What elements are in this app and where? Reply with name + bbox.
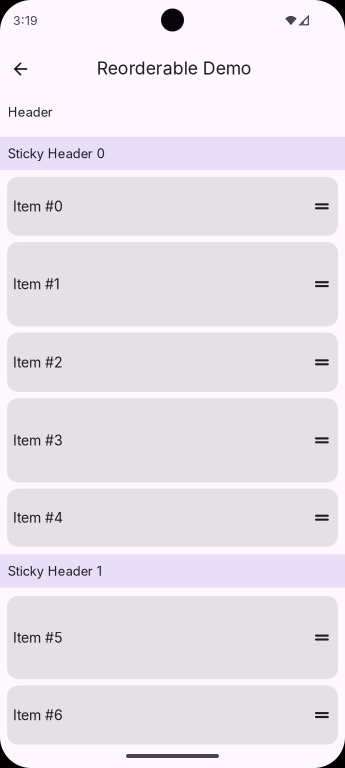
button[interactable]: Item #0 [7,177,338,236]
staticText: Item #0 [13,198,63,215]
staticText: Item #5 [13,629,63,646]
staticText: Item #3 [13,432,63,449]
staticText: Sticky Header 0 [8,146,105,161]
button[interactable]: Item #2 [7,333,338,392]
staticText: Reorderable Demo [97,57,252,79]
staticText: Item #1 [13,276,60,293]
button[interactable]: Item #4 [7,489,338,547]
staticText: 3:19 [13,13,38,28]
button[interactable]: Item #3 [7,398,338,482]
button[interactable]: Back [0,48,42,90]
button[interactable]: Item #1 [7,242,338,326]
staticText: Item #2 [13,354,63,371]
staticText: Item #4 [13,509,63,526]
button[interactable]: Item #6 [7,685,338,745]
staticText: Header [8,104,53,120]
staticText: Item #6 [13,707,63,723]
staticText: Sticky Header 1 [8,563,102,579]
button[interactable]: Item #5 [7,596,338,679]
